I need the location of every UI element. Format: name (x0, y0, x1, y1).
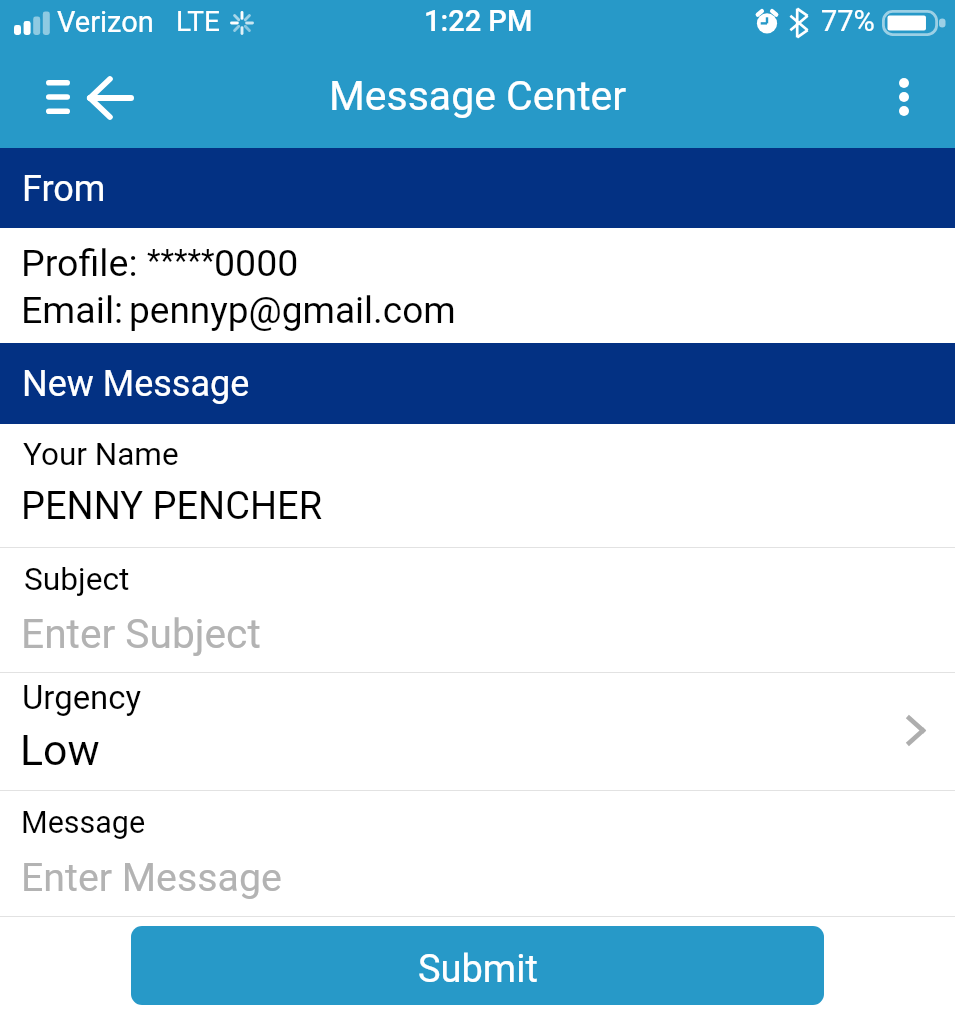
button[interactable]: Back (79, 66, 142, 130)
staticText: Subject (24, 561, 130, 598)
staticText: pennyp@gmail.com (129, 289, 456, 332)
staticText: Submit (418, 947, 538, 992)
button[interactable] (0, 424, 955, 547)
staticText: Message (21, 805, 146, 841)
staticText: Enter Message (21, 855, 282, 901)
button[interactable]: More options (874, 64, 934, 130)
staticText: 0000 (214, 241, 299, 285)
button[interactable]: Menu (30, 64, 85, 130)
staticText: Urgency (22, 678, 142, 717)
staticText: Profile: (21, 241, 138, 285)
button[interactable] (0, 229, 955, 343)
staticText: New Message (22, 363, 250, 405)
staticText: Email: (21, 288, 124, 332)
button[interactable]: Submit (131, 926, 824, 1005)
button[interactable] (0, 791, 955, 916)
button[interactable] (0, 673, 955, 790)
staticText: Your Name (23, 436, 179, 473)
staticText: PENNY PENCHER (21, 484, 323, 529)
staticText: 77% (821, 4, 875, 38)
staticText: Enter Subject (21, 610, 261, 658)
button[interactable] (0, 548, 955, 672)
staticText: Message Center (329, 72, 627, 120)
staticText: Low (20, 725, 100, 775)
staticText: 1:22 PM (424, 4, 533, 38)
staticText: ***** (147, 242, 215, 279)
staticText: From (22, 168, 106, 210)
staticText: Verizon (57, 5, 154, 39)
staticText: LTE (176, 5, 220, 38)
